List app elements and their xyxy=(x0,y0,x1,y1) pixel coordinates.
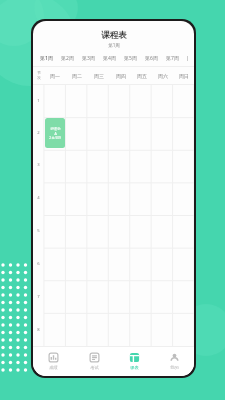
staticText: 护理学 xyxy=(50,127,61,131)
staticText: 周二 xyxy=(72,73,82,79)
button[interactable] xyxy=(111,150,130,180)
button[interactable]: 周六 xyxy=(152,67,173,84)
button[interactable] xyxy=(89,150,109,180)
staticText: 6 xyxy=(37,261,40,267)
button[interactable]: 护理学 xyxy=(45,118,65,148)
button[interactable]: 周三 xyxy=(88,67,110,84)
staticText: 1 xyxy=(37,98,40,104)
button[interactable]: 第3周 xyxy=(78,55,99,62)
button[interactable]: 周二 xyxy=(66,67,88,84)
staticText: 我的 xyxy=(170,365,179,370)
staticText: 成绩 xyxy=(49,365,58,370)
staticText: 7 xyxy=(37,294,40,300)
staticText: 8 xyxy=(37,327,40,333)
staticText: 3 xyxy=(37,162,40,168)
staticText: 第2周 xyxy=(61,55,74,62)
button[interactable]: 课表 xyxy=(114,346,154,376)
staticText: 第7周 xyxy=(166,55,179,62)
staticText: 2 栋 509 xyxy=(49,136,61,140)
staticText: 第4周 xyxy=(103,55,116,62)
button[interactable]: More weeks xyxy=(183,55,191,62)
button[interactable]: 考试 xyxy=(74,346,114,376)
staticText: 节 xyxy=(37,71,41,76)
staticText: 第3周 xyxy=(82,55,95,62)
button[interactable]: 周一 xyxy=(44,67,66,84)
staticText: 课程表 xyxy=(101,30,127,41)
button[interactable]: 周五 xyxy=(131,67,152,84)
button[interactable]: 第1周 xyxy=(36,55,57,62)
button[interactable]: 第5周 xyxy=(120,55,141,62)
staticText: 4 xyxy=(37,195,40,201)
staticText: 周五 xyxy=(137,73,147,79)
staticText: 周日 xyxy=(179,73,189,79)
button[interactable] xyxy=(111,215,130,246)
button[interactable]: 成绩 xyxy=(33,346,74,376)
staticText: | xyxy=(186,55,189,62)
button[interactable] xyxy=(67,215,87,246)
staticText: 周一 xyxy=(50,73,60,79)
button[interactable]: 周四 xyxy=(110,67,131,84)
button[interactable]: 周日 xyxy=(173,67,194,84)
button[interactable]: 第6周 xyxy=(141,55,162,62)
button[interactable]: 第2周 xyxy=(57,55,78,62)
button[interactable] xyxy=(89,215,109,246)
staticText: 第1周 xyxy=(108,42,120,48)
button[interactable]: 第4周 xyxy=(99,55,120,62)
button[interactable]: 第7周 xyxy=(162,55,183,62)
button[interactable]: 我的 xyxy=(154,346,194,376)
staticText: 第1周 xyxy=(40,55,53,62)
staticText: 周六 xyxy=(158,73,168,79)
staticText: 5 xyxy=(37,228,40,234)
